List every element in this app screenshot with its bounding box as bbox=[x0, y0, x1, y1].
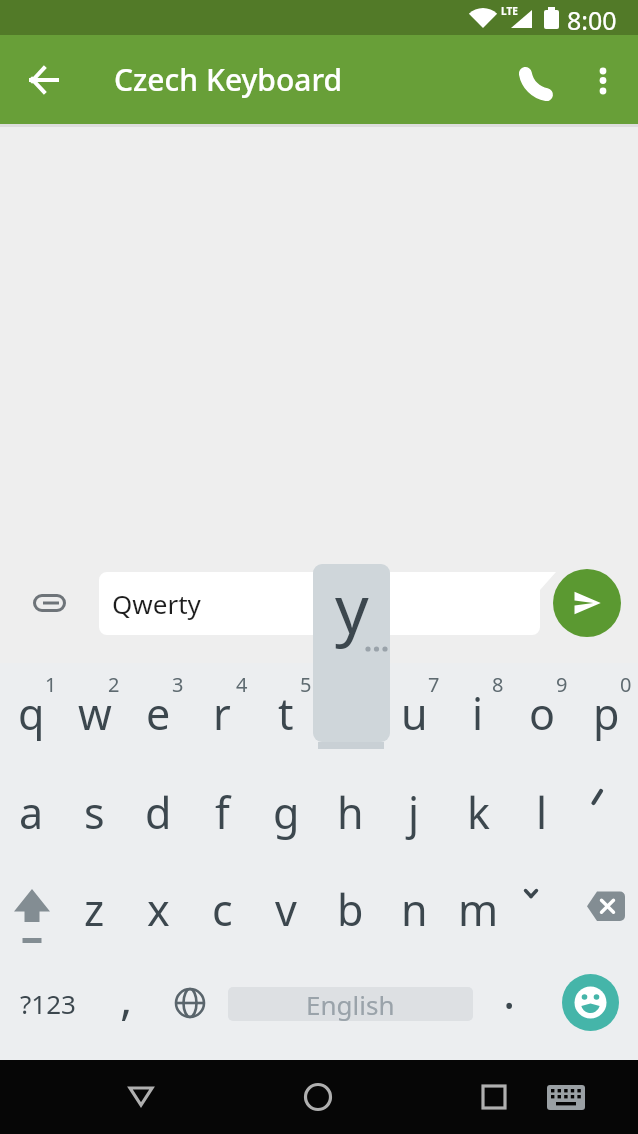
button[interactable] bbox=[294, 1072, 342, 1120]
button[interactable]: Qwerty bbox=[99, 572, 556, 635]
button[interactable]: r bbox=[190, 663, 254, 763]
button[interactable]: k bbox=[446, 763, 510, 862]
staticText: r bbox=[213, 684, 231, 743]
button[interactable]: i bbox=[446, 663, 510, 763]
staticText: 8:00 bbox=[567, 3, 617, 37]
button[interactable]: n bbox=[382, 862, 446, 956]
staticText: u bbox=[401, 684, 428, 743]
button[interactable]: d bbox=[126, 763, 190, 862]
staticText: v bbox=[275, 880, 297, 939]
button[interactable]: English bbox=[228, 987, 473, 1021]
button[interactable]: z bbox=[63, 862, 126, 956]
button[interactable] bbox=[553, 569, 621, 637]
button[interactable] bbox=[0, 862, 63, 956]
button[interactable] bbox=[574, 862, 638, 956]
button[interactable] bbox=[574, 763, 638, 862]
button[interactable]: x bbox=[126, 862, 190, 956]
button[interactable]: , bbox=[96, 956, 160, 1050]
button[interactable]: . bbox=[478, 956, 542, 1050]
staticText: y bbox=[335, 564, 369, 652]
staticText: 7 bbox=[428, 671, 440, 698]
button[interactable]: m bbox=[446, 862, 510, 956]
button[interactable]: f bbox=[190, 763, 254, 862]
staticText: i bbox=[472, 684, 484, 743]
button[interactable] bbox=[117, 1072, 165, 1120]
button[interactable]: ?123 bbox=[8, 956, 88, 1050]
staticText: s bbox=[84, 783, 105, 842]
staticText: b bbox=[337, 880, 364, 939]
staticText: z bbox=[84, 880, 105, 939]
button[interactable]: g bbox=[254, 763, 318, 862]
staticText: English bbox=[306, 987, 395, 1021]
staticText: 2 bbox=[108, 671, 120, 698]
button[interactable]: c bbox=[190, 862, 254, 956]
button[interactable]: a bbox=[0, 763, 63, 862]
button[interactable]: u bbox=[382, 663, 446, 763]
button[interactable] bbox=[318, 663, 382, 763]
staticText: j bbox=[408, 783, 420, 842]
button[interactable] bbox=[542, 1072, 590, 1120]
button[interactable]: w bbox=[63, 663, 126, 763]
staticText: t bbox=[278, 684, 294, 743]
staticText: d bbox=[145, 783, 172, 842]
staticText: o bbox=[529, 684, 556, 743]
staticText: m bbox=[458, 880, 499, 939]
staticText: 5 bbox=[300, 671, 312, 698]
staticText: h bbox=[337, 783, 364, 842]
staticText: , bbox=[120, 966, 133, 1029]
staticText: g bbox=[273, 783, 300, 842]
staticText: x bbox=[147, 880, 170, 939]
staticText: 0 bbox=[620, 671, 632, 698]
staticText: Czech Keyboard bbox=[114, 59, 343, 100]
staticText: 3 bbox=[172, 671, 184, 698]
button[interactable] bbox=[470, 1072, 518, 1120]
staticText: 1 bbox=[45, 671, 57, 698]
staticText: w bbox=[78, 684, 112, 743]
button[interactable]: j bbox=[382, 763, 446, 862]
button[interactable]: e bbox=[126, 663, 190, 763]
staticText: k bbox=[467, 783, 490, 842]
button[interactable] bbox=[514, 56, 562, 104]
button[interactable]: l bbox=[510, 763, 574, 862]
button[interactable]: s bbox=[63, 763, 126, 862]
button[interactable] bbox=[562, 974, 619, 1031]
staticText: p bbox=[593, 684, 620, 743]
staticText: Qwerty bbox=[112, 586, 201, 621]
staticText: n bbox=[401, 880, 428, 939]
staticText: . bbox=[503, 960, 516, 1023]
button[interactable]: v bbox=[254, 862, 318, 956]
button[interactable]: t bbox=[254, 663, 318, 763]
staticText: l bbox=[536, 783, 548, 842]
staticText: q bbox=[18, 684, 45, 743]
button[interactable] bbox=[25, 583, 73, 623]
staticText: LTE bbox=[501, 4, 518, 18]
button[interactable]: p bbox=[574, 663, 638, 763]
staticText: e bbox=[146, 684, 171, 743]
button[interactable]: o bbox=[510, 663, 574, 763]
staticText: f bbox=[215, 783, 230, 842]
button[interactable] bbox=[510, 862, 574, 956]
staticText: 9 bbox=[556, 671, 568, 698]
staticText: c bbox=[212, 880, 233, 939]
staticText: ?123 bbox=[20, 986, 76, 1021]
button[interactable] bbox=[20, 56, 68, 104]
button[interactable] bbox=[579, 56, 627, 104]
staticText: a bbox=[19, 783, 44, 842]
staticText: 8 bbox=[492, 671, 504, 698]
button[interactable]: q bbox=[0, 663, 63, 763]
button[interactable]: h bbox=[318, 763, 382, 862]
staticText: 4 bbox=[236, 671, 248, 698]
button[interactable] bbox=[160, 972, 220, 1032]
button[interactable]: b bbox=[318, 862, 382, 956]
